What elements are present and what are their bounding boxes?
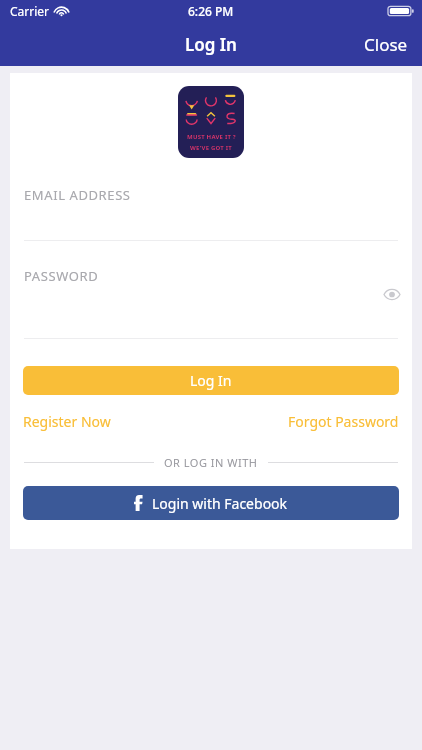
staticText: PASSWORD [24,267,99,285]
staticText: Log In [185,33,237,56]
staticText: WE'VE GOT IT [190,144,232,152]
button[interactable]: Show password [378,283,406,306]
staticText: MUST HAVE IT ? [187,133,236,141]
staticText: Close [364,33,408,56]
staticText: Login with Facebook [152,494,288,513]
button[interactable]: Close [350,25,422,64]
button[interactable]: Log In [23,366,399,395]
staticText: OR LOG IN WITH [164,455,258,470]
staticText: EMAIL ADDRESS [24,186,131,204]
staticText: Carrier [10,3,50,19]
button[interactable]: Login with Facebook [23,486,399,520]
staticText: Log In [190,371,232,390]
button[interactable]: Register Now [23,412,111,431]
staticText: 6:26 PM [188,3,234,19]
staticText: Forgot Password [288,412,399,431]
button[interactable]: Forgot Password [288,412,399,431]
staticText: Register Now [23,412,111,431]
